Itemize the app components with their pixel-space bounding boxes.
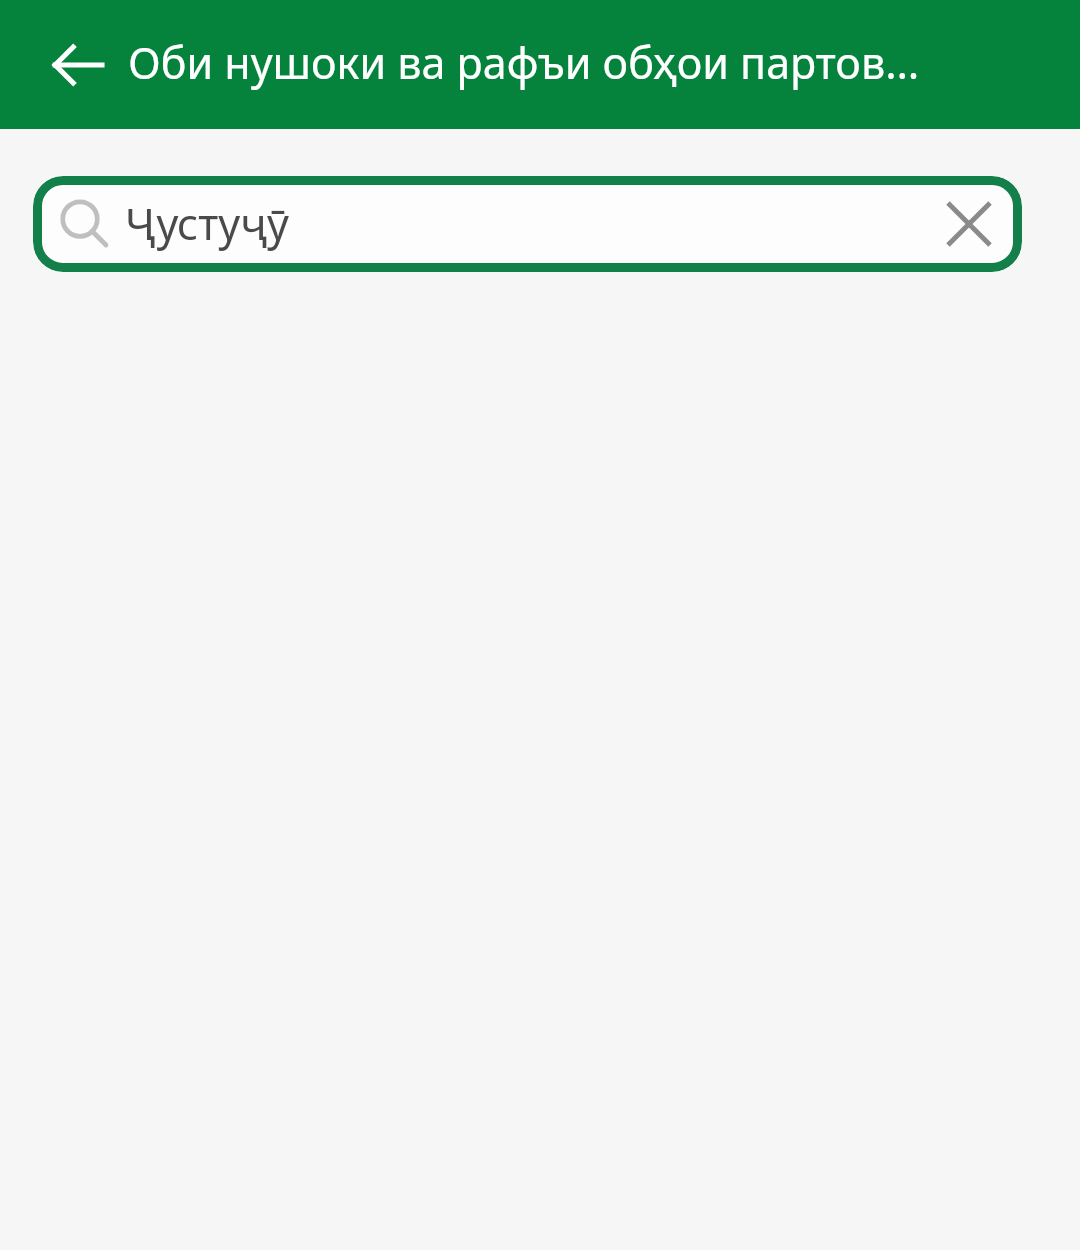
button[interactable]: Clear search: [930, 185, 1008, 263]
button[interactable]: Ҷустуҷӯ: [33, 176, 1022, 272]
button[interactable]: Back: [36, 23, 120, 107]
staticText: Оби нушоки ва рафъи обҳои партов…: [128, 33, 920, 92]
staticText: Ҷустуҷӯ: [125, 194, 930, 253]
